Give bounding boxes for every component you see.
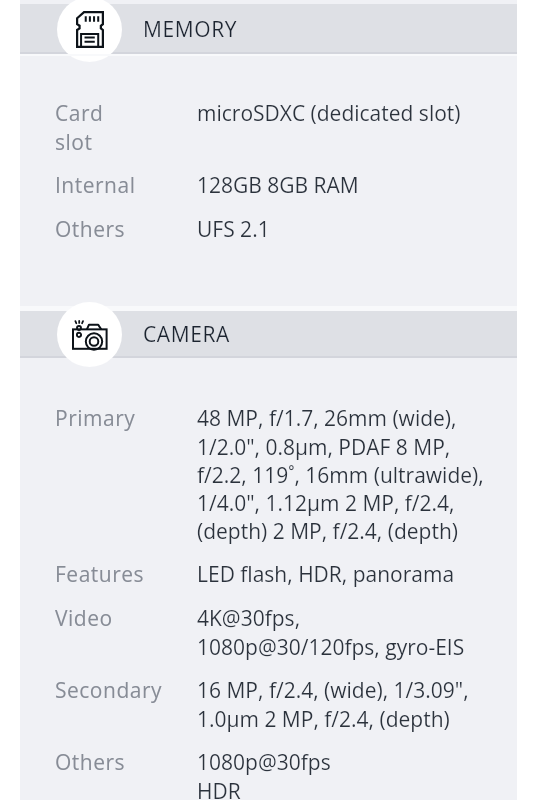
staticText: 4K@30fps, 1080p@30/120fps, gyro-EIS [197, 604, 465, 661]
other: Camera [57, 302, 122, 367]
button[interactable]: Features [20, 545, 517, 589]
staticText: CAMERA [143, 320, 230, 349]
button[interactable]: Others [20, 733, 517, 800]
button[interactable]: Video [20, 589, 517, 661]
button[interactable]: Internal [20, 156, 517, 200]
staticText: Others [55, 215, 197, 244]
staticText: 16 MP, f/2.4, (wide), 1/3.09", 1.0µm 2 M… [197, 676, 469, 733]
staticText: Others [55, 748, 197, 777]
staticText: 1080p@30fps HDR [197, 748, 331, 800]
button[interactable]: MEMORY [20, 4, 517, 54]
staticText: Secondary [55, 676, 197, 705]
other: Memory [57, 0, 122, 62]
button[interactable]: CAMERA [20, 311, 517, 358]
staticText: MEMORY [143, 15, 238, 44]
staticText: UFS 2.1 [197, 215, 270, 244]
staticText: LED flash, HDR, panorama [197, 560, 455, 589]
button[interactable]: Others [20, 200, 517, 244]
staticText: Features [55, 560, 197, 589]
staticText: 48 MP, f/1.7, 26mm (wide), 1/2.0", 0.8µm… [197, 404, 484, 545]
staticText: 128GB 8GB RAM [197, 171, 359, 200]
button[interactable]: Primary [20, 404, 517, 545]
button[interactable]: Secondary [20, 661, 517, 733]
staticText: microSDXC (dedicated slot) [197, 99, 461, 128]
staticText: Primary [55, 404, 197, 433]
staticText: Card slot [55, 99, 197, 156]
staticText: Video [55, 604, 197, 633]
staticText: Internal [55, 171, 197, 200]
button[interactable]: Card slot [20, 99, 517, 156]
